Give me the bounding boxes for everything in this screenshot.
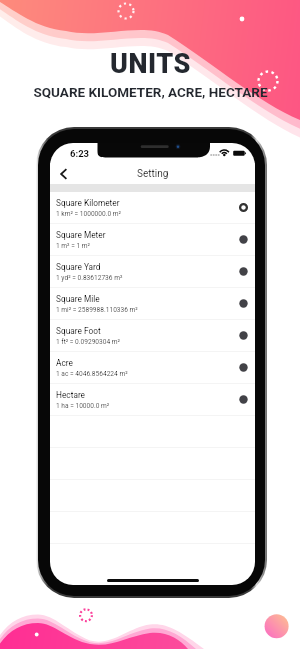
staticText: 1 yd² = 0.83612736 m² bbox=[56, 274, 123, 282]
staticText: Square Mile bbox=[56, 294, 100, 304]
button[interactable]: Square Yard bbox=[50, 256, 255, 287]
staticText: 6:23 bbox=[70, 148, 90, 159]
staticText: Square Meter bbox=[56, 230, 106, 240]
staticText: Square Foot bbox=[56, 326, 101, 336]
button[interactable]: Hectare bbox=[50, 384, 255, 415]
staticText: Square Yard bbox=[56, 262, 101, 272]
button[interactable]: Square Meter bbox=[50, 224, 255, 255]
button[interactable]: Back bbox=[53, 163, 75, 184]
staticText: 1 ac = 4046.8564224 m² bbox=[56, 370, 128, 378]
staticText: 1 km² = 1000000.0 m² bbox=[56, 210, 121, 218]
staticText: 1 mi² = 2589988.110336 m² bbox=[56, 306, 138, 314]
button[interactable]: Acre bbox=[50, 352, 255, 383]
staticText: Setting bbox=[137, 168, 169, 180]
staticText: UNITS bbox=[110, 48, 191, 80]
staticText: 1 ft² = 0.09290304 m² bbox=[56, 338, 121, 346]
staticText: Acre bbox=[56, 358, 73, 368]
button[interactable]: Square Kilometer bbox=[50, 192, 255, 223]
staticText: Hectare bbox=[56, 390, 86, 400]
staticText: Square Kilometer bbox=[56, 198, 120, 208]
button[interactable]: Square Foot bbox=[50, 320, 255, 351]
staticText: 1 m² = 1 m² bbox=[56, 242, 90, 250]
button[interactable]: Square Mile bbox=[50, 288, 255, 319]
staticText: SQUARE KILOMETER, ACRE, HECTARE bbox=[33, 84, 268, 100]
staticText: 1 ha = 10000.0 m² bbox=[56, 402, 110, 410]
